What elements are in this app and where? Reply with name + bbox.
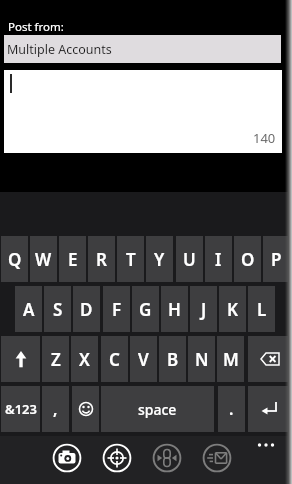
staticText: I	[215, 248, 222, 271]
button[interactable]: T	[117, 236, 144, 282]
staticText: T	[126, 248, 136, 271]
staticText: H	[168, 298, 181, 321]
staticText: M	[223, 348, 239, 371]
button[interactable]: V	[130, 336, 157, 382]
button[interactable]	[252, 436, 280, 454]
staticText: Post from:	[8, 19, 64, 35]
staticText: Z	[51, 348, 61, 371]
button[interactable]	[248, 336, 292, 382]
button[interactable]: .	[218, 386, 245, 432]
staticText: U	[183, 248, 196, 271]
staticText: L	[257, 298, 267, 321]
button[interactable]: R	[88, 236, 115, 282]
staticText: R	[96, 248, 107, 271]
button[interactable]	[201, 442, 233, 474]
staticText: A	[23, 298, 35, 321]
button[interactable]	[248, 386, 292, 432]
button[interactable]: P	[263, 236, 290, 282]
button[interactable]: N	[188, 336, 215, 382]
button[interactable]: H	[161, 286, 188, 332]
staticText: X	[79, 348, 90, 371]
button[interactable]: I	[205, 236, 232, 282]
button[interactable]	[151, 442, 183, 474]
staticText: C	[109, 348, 120, 371]
button[interactable]	[1, 336, 40, 382]
button[interactable]: 140	[4, 70, 282, 153]
button[interactable]: K	[219, 286, 246, 332]
button[interactable]: C	[101, 336, 128, 382]
button[interactable]: L	[248, 286, 275, 332]
staticText: D	[80, 298, 93, 321]
button[interactable]: Y	[146, 236, 173, 282]
button[interactable]	[101, 442, 133, 474]
button[interactable]: F	[103, 286, 130, 332]
staticText: K	[227, 298, 238, 321]
button[interactable]: E	[59, 236, 86, 282]
staticText: &123	[5, 400, 37, 418]
button[interactable]: B	[159, 336, 186, 382]
staticText: Q	[8, 248, 22, 271]
button[interactable]: S	[44, 286, 71, 332]
button[interactable]	[51, 442, 83, 474]
staticText: Y	[154, 248, 165, 271]
staticText: S	[53, 298, 63, 321]
staticText: P	[271, 248, 282, 271]
button[interactable]	[72, 386, 99, 432]
button[interactable]: space	[101, 386, 214, 432]
button[interactable]: A	[15, 286, 42, 332]
staticText: O	[241, 248, 255, 271]
button[interactable]: X	[71, 336, 98, 382]
staticText: F	[112, 298, 122, 321]
button[interactable]: Z	[42, 336, 69, 382]
staticText: space	[138, 400, 177, 419]
staticText: B	[167, 348, 179, 371]
button[interactable]: M	[217, 336, 244, 382]
staticText: W	[35, 248, 52, 271]
button[interactable]: W	[30, 236, 57, 282]
staticText: J	[201, 298, 207, 321]
staticText: 140	[253, 129, 276, 147]
staticText: V	[138, 348, 149, 371]
button[interactable]: &123	[1, 386, 40, 432]
button[interactable]: U	[176, 236, 203, 282]
button[interactable]: J	[190, 286, 217, 332]
staticText: Multiple Accounts	[7, 41, 112, 58]
button[interactable]: Q	[1, 236, 28, 282]
button[interactable]: Multiple Accounts	[4, 35, 281, 63]
staticText: .	[229, 398, 234, 420]
button[interactable]: ,	[42, 386, 69, 432]
staticText: E	[68, 248, 78, 271]
button[interactable]: O	[234, 236, 261, 282]
staticText: G	[139, 298, 152, 321]
staticText: ,	[53, 398, 58, 420]
button[interactable]: D	[73, 286, 100, 332]
button[interactable]: G	[132, 286, 159, 332]
staticText: N	[195, 348, 209, 371]
